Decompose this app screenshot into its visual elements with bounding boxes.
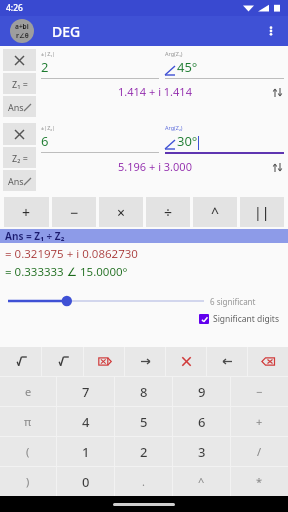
staticText: π	[24, 414, 32, 429]
staticText: 5.196 + i 3.000	[118, 159, 192, 174]
button[interactable]: −	[231, 377, 288, 406]
button[interactable]: Swap form	[270, 85, 284, 99]
staticText: (	[26, 444, 30, 459]
button[interactable]: ×	[99, 197, 143, 227]
staticText: ±|Z₂|	[41, 124, 56, 131]
staticText: DEG	[52, 22, 81, 41]
staticText: 45°	[177, 58, 198, 76]
staticText: 5	[140, 413, 148, 431]
button[interactable]: Significant digits	[199, 313, 280, 325]
staticText: 4:26	[6, 2, 23, 14]
button[interactable]: Clear	[166, 347, 206, 376]
staticText: 3	[198, 443, 206, 461]
button[interactable]: More options	[258, 18, 284, 44]
staticText: Z₂ =	[12, 152, 28, 164]
staticText: Ans	[8, 101, 24, 113]
button[interactable]: −	[52, 197, 96, 227]
button[interactable]: 4	[57, 407, 114, 436]
staticText: *	[256, 474, 263, 489]
button[interactable]: *	[231, 467, 288, 496]
button[interactable]: Ans	[3, 170, 36, 191]
button[interactable]: 5	[115, 407, 172, 436]
staticText: 1	[82, 443, 90, 461]
staticText: 8	[140, 383, 148, 401]
button[interactable]: Cube root	[42, 347, 83, 376]
button[interactable]: 9	[173, 377, 230, 406]
button[interactable]: Significant digits slider	[8, 292, 204, 310]
staticText: )	[26, 474, 30, 489]
button[interactable]: )	[0, 467, 56, 496]
staticText: 0	[82, 473, 90, 491]
staticText: 6 significant	[210, 296, 288, 307]
button[interactable]: Square root	[0, 347, 41, 376]
staticText: 30°	[177, 132, 198, 150]
button[interactable]: 8	[115, 377, 172, 406]
staticText: ÷	[164, 203, 173, 222]
button[interactable]: ^	[173, 467, 230, 496]
button[interactable]: 2	[115, 437, 172, 466]
button[interactable]: /	[231, 437, 288, 466]
button[interactable]: Ans	[3, 96, 36, 117]
staticText: .	[142, 474, 145, 489]
staticText: Z₁ =	[12, 78, 28, 90]
staticText: ^	[211, 203, 220, 222]
button[interactable]: Backspace	[248, 347, 288, 376]
button[interactable]: ÷	[146, 197, 190, 227]
button[interactable]: ||	[240, 197, 284, 227]
button[interactable]	[3, 123, 36, 145]
button[interactable]: Swap form	[270, 160, 284, 174]
staticText: 9	[198, 383, 206, 401]
staticText: ^	[198, 474, 205, 489]
staticText: −	[70, 203, 79, 222]
button[interactable]: App icon	[10, 19, 34, 43]
button[interactable]: 6	[173, 407, 230, 436]
staticText: Arg(Z₂)	[165, 124, 183, 131]
button[interactable]: e	[0, 377, 56, 406]
staticText: ||	[254, 203, 270, 222]
button[interactable]: Z₁ =	[3, 73, 36, 94]
staticText: Arg(Z₁)	[165, 50, 183, 57]
button[interactable]: Ans = Z₁ ÷ Z₂	[0, 229, 288, 243]
button[interactable]: Z₂ =	[3, 147, 36, 168]
button[interactable]: 1	[57, 437, 114, 466]
staticText: /	[257, 444, 262, 459]
button[interactable]: π	[0, 407, 56, 436]
staticText: 1.414 + i 1.414	[118, 84, 192, 99]
staticText: 2	[41, 58, 49, 76]
staticText: = 0.321975 + i 0.0862730	[5, 246, 138, 262]
staticText: 2	[140, 443, 148, 461]
staticText: r∠θ	[16, 31, 29, 40]
staticText: Ans	[8, 175, 24, 187]
staticText: = 0.333333 ∠ 15.0000°	[5, 264, 128, 280]
staticText: +	[22, 203, 31, 222]
staticText: 6	[198, 413, 206, 431]
button[interactable]: +	[4, 197, 49, 227]
staticText: e	[25, 384, 32, 399]
staticText: a+bi	[15, 22, 29, 31]
staticText: +	[256, 414, 263, 429]
staticText: 7	[82, 383, 90, 401]
button[interactable]: Clear all	[84, 347, 124, 376]
staticText: 6	[41, 132, 49, 150]
staticText: Ans = Z₁ ÷ Z₂	[5, 229, 65, 243]
button[interactable]: ^	[193, 197, 237, 227]
button[interactable]: 0	[57, 467, 114, 496]
button[interactable]: (	[0, 437, 56, 466]
staticText: ±|Z₁|	[41, 50, 56, 57]
button[interactable]: 3	[173, 437, 230, 466]
button[interactable]	[3, 49, 36, 71]
button[interactable]: +	[231, 407, 288, 436]
staticText: Significant digits	[213, 313, 280, 325]
button[interactable]: Cursor left	[207, 347, 247, 376]
staticText: ×	[117, 203, 126, 222]
button[interactable]: 7	[57, 377, 114, 406]
button[interactable]: Cursor right	[125, 347, 165, 376]
staticText: 4	[82, 413, 90, 431]
staticText: −	[256, 384, 263, 399]
